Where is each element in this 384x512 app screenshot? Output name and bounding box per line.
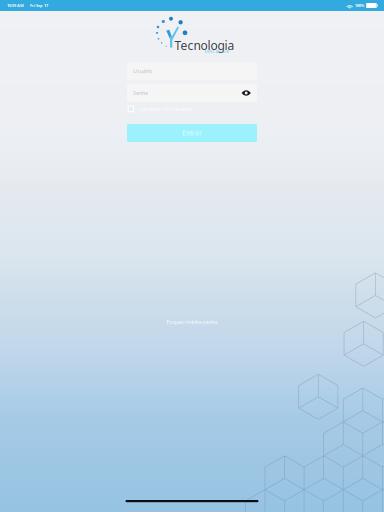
staticText: Lembrar meu usuário — [140, 105, 192, 113]
button[interactable]: Show password — [241, 89, 251, 97]
staticText: Usuário — [133, 67, 152, 75]
staticText: Senha — [133, 89, 148, 97]
staticText: Tecnologia — [175, 37, 235, 53]
staticText: 10:59 AM — [7, 3, 24, 8]
staticText: Fri Sep 17 — [30, 3, 48, 8]
button[interactable]: Esqueci minha senha — [142, 317, 242, 327]
staticText: ESPECIALISTA — [204, 49, 229, 54]
button[interactable]: Entrar — [127, 124, 257, 142]
staticText: Entrar — [182, 129, 202, 137]
staticText: 100% — [355, 3, 365, 8]
staticText: Esqueci minha senha — [166, 318, 217, 326]
